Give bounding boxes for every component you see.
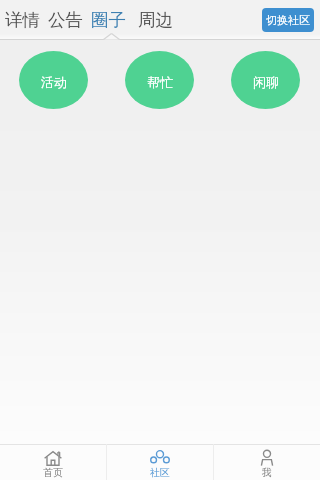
staticText: 闲聊 — [253, 74, 279, 90]
staticText: 我 — [262, 466, 272, 479]
staticText: 圈子 — [91, 9, 126, 31]
button[interactable]: 公告 — [48, 9, 83, 31]
staticText: 社区 — [150, 466, 170, 479]
staticText: 首页 — [43, 466, 63, 479]
button[interactable]: 帮忙 — [125, 51, 194, 109]
staticText: 公告 — [48, 9, 83, 31]
staticText: 详情 — [5, 9, 40, 31]
button[interactable]: 首页 — [0, 444, 106, 480]
button[interactable]: 活动 — [19, 51, 88, 109]
button[interactable]: 社区 — [107, 444, 213, 480]
button[interactable]: 圈子 — [91, 9, 126, 31]
button[interactable]: 周边 — [138, 9, 173, 31]
button[interactable]: 闲聊 — [231, 51, 300, 109]
staticText: 切换社区 — [266, 13, 310, 27]
staticText: 帮忙 — [147, 74, 173, 90]
button[interactable]: 我 — [214, 444, 320, 480]
staticText: 周边 — [138, 9, 173, 31]
button[interactable]: 详情 — [5, 9, 40, 31]
button[interactable]: 切换社区 — [262, 8, 314, 32]
staticText: 活动 — [41, 74, 67, 90]
